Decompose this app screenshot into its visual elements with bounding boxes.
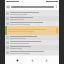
button[interactable] xyxy=(5,10,59,16)
button[interactable]: Search xyxy=(30,56,35,64)
button[interactable]: Navigate up xyxy=(6,5,10,9)
button[interactable] xyxy=(5,16,59,21)
button[interactable] xyxy=(5,26,59,35)
button[interactable] xyxy=(5,40,59,45)
button[interactable] xyxy=(5,50,59,55)
button[interactable]: Navigate up xyxy=(5,3,59,10)
button[interactable] xyxy=(5,45,59,50)
button[interactable]: More options xyxy=(55,5,58,8)
button[interactable] xyxy=(5,35,59,40)
button[interactable]: Home xyxy=(15,56,20,64)
button[interactable] xyxy=(5,21,59,26)
button[interactable]: Profile xyxy=(44,56,49,64)
